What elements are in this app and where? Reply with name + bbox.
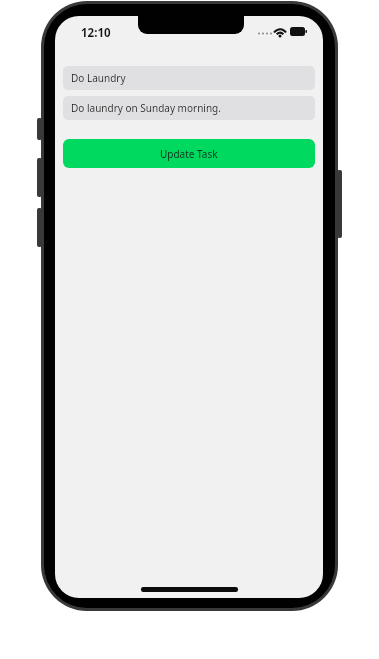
button[interactable]: Do laundry on Sunday morning. bbox=[63, 96, 315, 120]
staticText: Do Laundry bbox=[71, 71, 126, 85]
staticText: Update Task bbox=[160, 147, 218, 161]
staticText: 12:10 bbox=[81, 25, 111, 41]
button[interactable]: Update Task bbox=[63, 139, 315, 168]
staticText: Do laundry on Sunday morning. bbox=[71, 101, 221, 115]
button[interactable]: Do Laundry bbox=[63, 66, 315, 90]
